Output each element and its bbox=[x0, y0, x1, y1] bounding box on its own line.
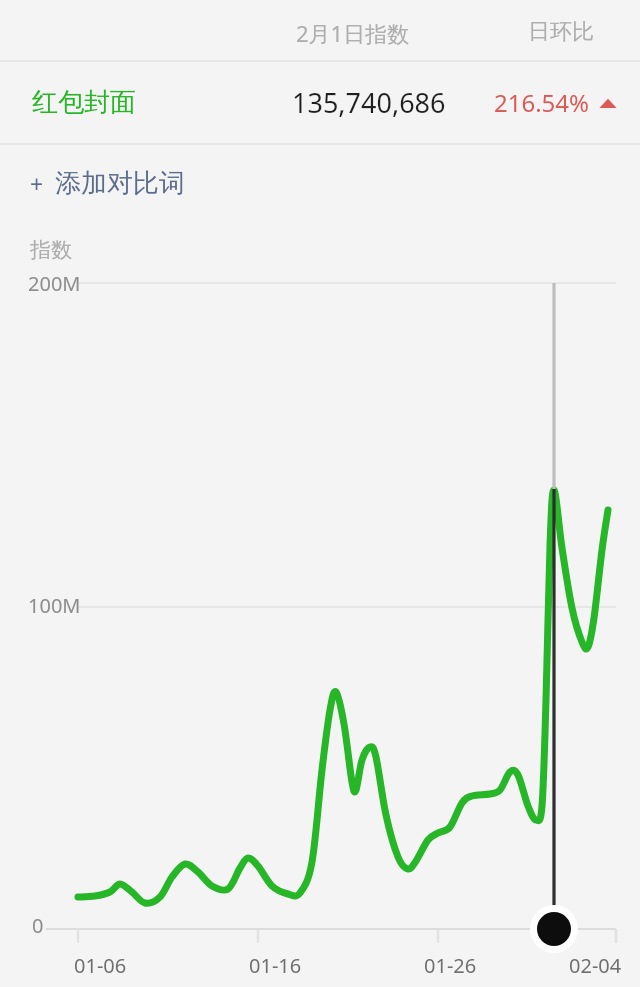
button[interactable]: + bbox=[0, 145, 640, 221]
staticText: 指数 bbox=[30, 237, 72, 263]
staticText: 2月1日指数 bbox=[296, 18, 410, 48]
staticText: 添加对比词 bbox=[55, 167, 185, 200]
staticText: 01-06 bbox=[74, 952, 127, 979]
staticText: 日环比 bbox=[528, 18, 594, 46]
staticText: + bbox=[30, 168, 44, 199]
staticText: 红包封面 bbox=[32, 86, 136, 119]
staticText: 01-16 bbox=[249, 952, 302, 979]
button[interactable]: 红包封面 bbox=[0, 62, 640, 142]
staticText: 02-04 bbox=[569, 952, 622, 979]
staticText: 0 bbox=[32, 912, 44, 939]
staticText: 01-26 bbox=[424, 952, 477, 979]
button[interactable]: Selected data point 02-01 bbox=[531, 907, 577, 953]
staticText: 135,740,686 bbox=[292, 84, 446, 121]
staticText: 100M bbox=[28, 592, 81, 619]
staticText: 216.54% bbox=[494, 86, 590, 119]
staticText: 200M bbox=[28, 270, 81, 297]
